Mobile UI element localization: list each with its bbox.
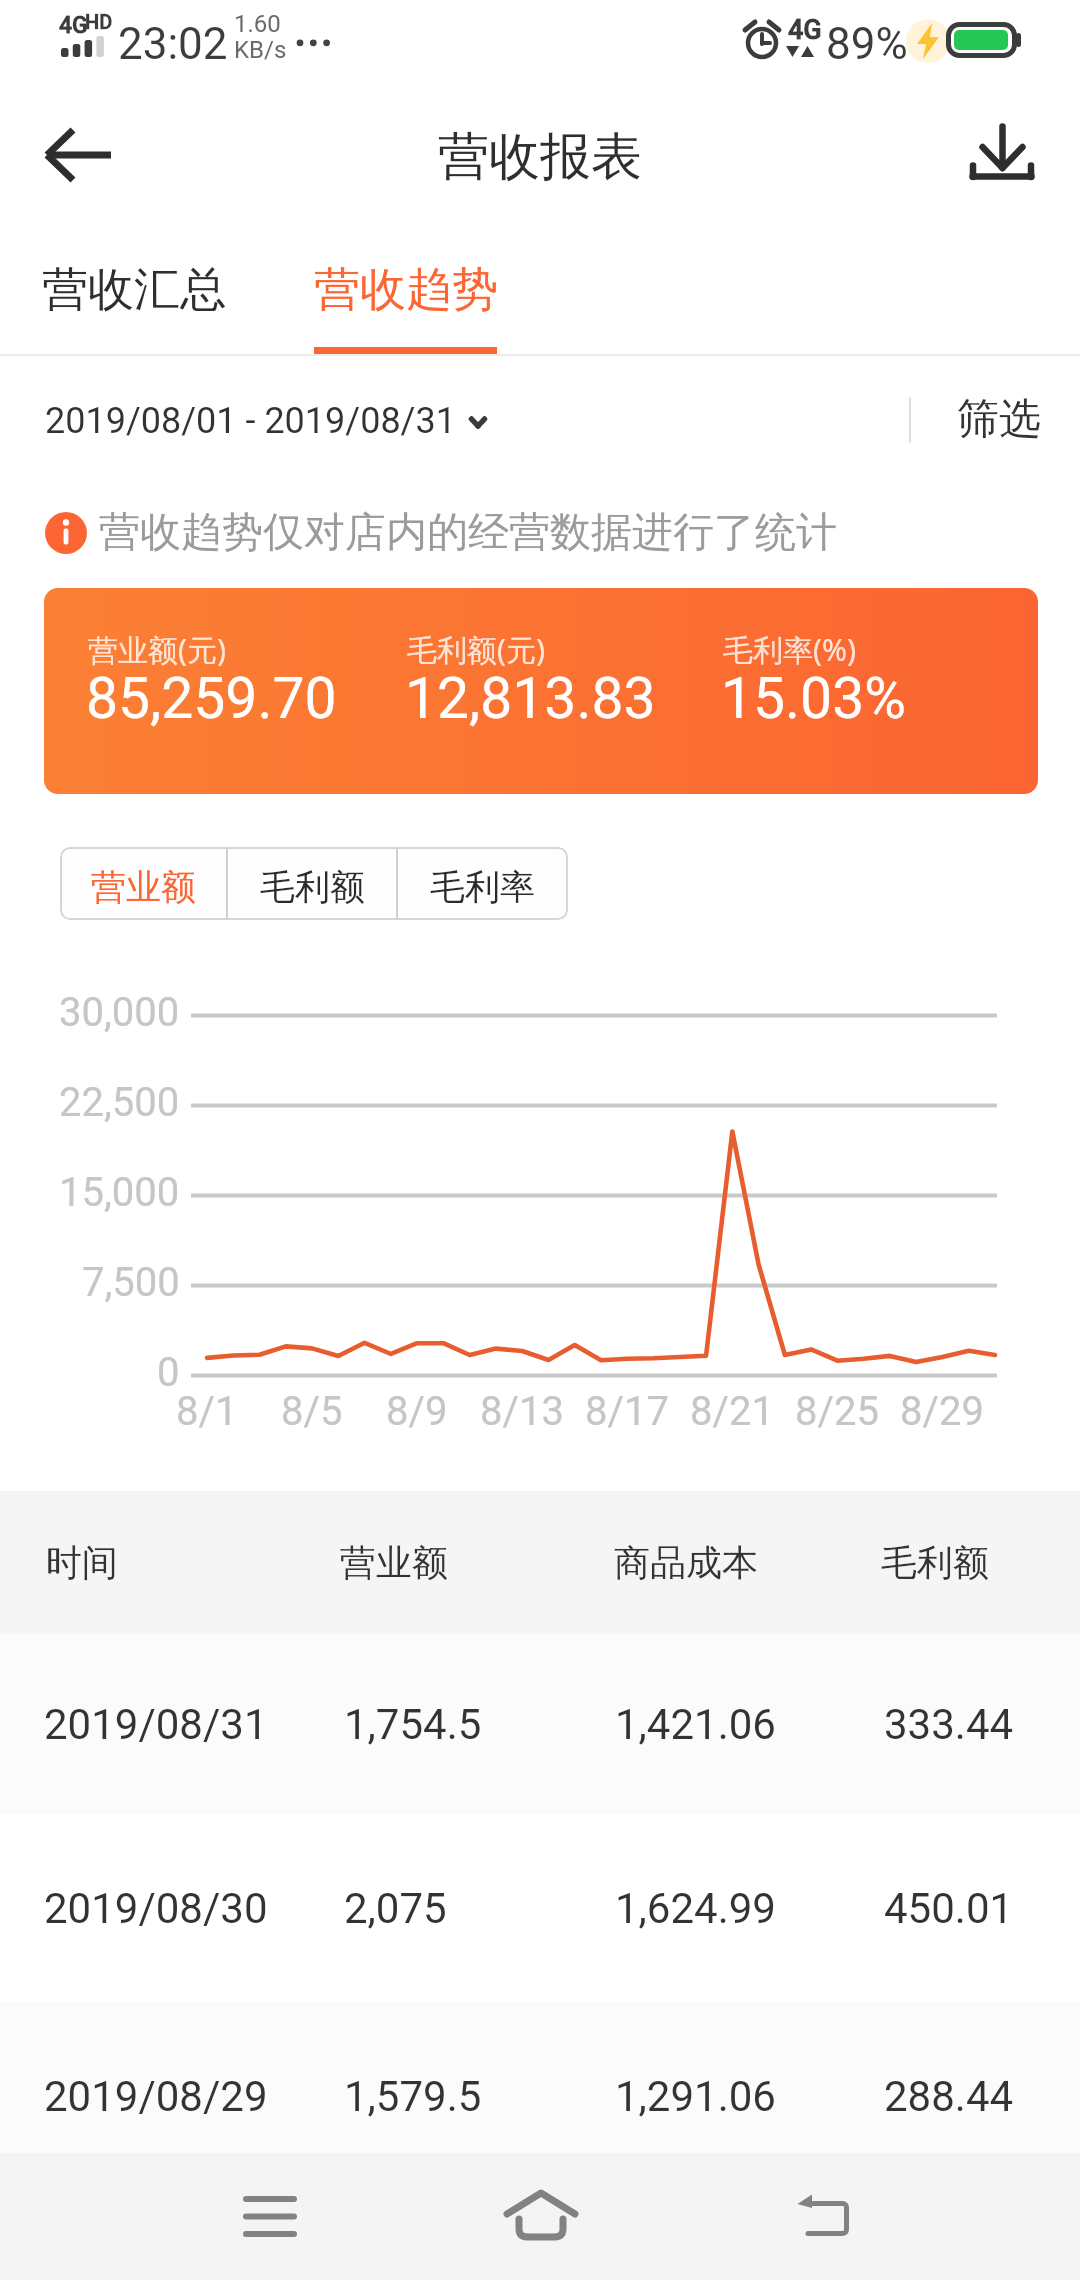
staticText: HD	[85, 10, 113, 33]
staticText: 15,000	[59, 1169, 180, 1216]
staticText: KB/s	[234, 36, 287, 64]
staticText: 营收报表	[438, 125, 642, 189]
staticText: 8/13	[480, 1388, 564, 1435]
staticText: 营业额(元)	[88, 629, 226, 670]
staticText: 23:02	[118, 18, 228, 70]
button[interactable]: Back	[750, 2160, 870, 2270]
staticText: 2019/08/01 - 2019/08/31	[45, 400, 456, 442]
staticText: 8/21	[690, 1388, 774, 1435]
staticText: 8/29	[900, 1388, 984, 1435]
button[interactable]: Home	[481, 2160, 601, 2270]
staticText: 12,813.83	[405, 665, 656, 732]
staticText: 营收汇总	[42, 261, 226, 319]
staticText: 8/9	[386, 1388, 448, 1435]
staticText: 筛选	[957, 393, 1041, 446]
staticText: 2019/08/30	[44, 1884, 268, 1933]
button[interactable]: 2019/08/30	[0, 1814, 1080, 2002]
staticText: 4G	[788, 14, 822, 46]
button[interactable]: 筛选	[935, 376, 1063, 462]
staticText: 毛利率	[430, 865, 535, 909]
staticText: 30,000	[59, 989, 180, 1036]
staticText: 8/25	[795, 1388, 879, 1435]
button[interactable]: 2019/08/01 - 2019/08/31	[14, 376, 514, 462]
staticText: 2019/08/29	[44, 2072, 268, 2121]
staticText: 营业额	[340, 1540, 448, 1585]
staticText: 2019/08/31	[44, 1700, 268, 1749]
staticText: 1,754.5	[344, 1700, 482, 1749]
button[interactable]: 2019/08/31	[0, 1634, 1080, 1814]
staticText: 毛利额	[881, 1540, 989, 1585]
button[interactable]: 营业额(元)	[44, 588, 1038, 794]
staticText: 8/5	[281, 1388, 343, 1435]
staticText: 288.44	[884, 2072, 1014, 2121]
staticText: 营收趋势	[314, 261, 498, 319]
button[interactable]: Recents	[210, 2160, 330, 2270]
staticText: 商品成本	[614, 1540, 758, 1585]
button[interactable]: 营收趋势	[272, 232, 540, 348]
staticText: 85,259.70	[86, 665, 337, 732]
staticText: 333.44	[884, 1700, 1014, 1749]
staticText: 毛利额	[260, 865, 365, 909]
staticText: 1,624.99	[615, 1884, 776, 1933]
button[interactable]: 2019/08/29	[0, 2002, 1080, 2190]
staticText: 22,500	[59, 1079, 180, 1126]
staticText: 2,075	[344, 1884, 447, 1933]
staticText: 15.03%	[721, 665, 906, 732]
staticText: 营业额	[91, 865, 196, 909]
button[interactable]: 营业额	[60, 847, 227, 920]
staticText: 毛利率(%)	[723, 629, 856, 670]
staticText: 89%	[826, 18, 908, 70]
button[interactable]: 毛利额	[227, 847, 397, 920]
button[interactable]: 毛利率	[397, 847, 568, 920]
staticText: 营收趋势仅对店内的经营数据进行了统计	[99, 507, 837, 559]
staticText: 时间	[46, 1540, 118, 1585]
staticText: 7,500	[82, 1259, 180, 1306]
staticText: 450.01	[884, 1884, 1014, 1933]
button[interactable]: Back	[14, 109, 114, 201]
staticText: 0	[157, 1349, 180, 1396]
button[interactable]: Download	[952, 109, 1052, 201]
staticText: 4G	[59, 12, 88, 39]
staticText: 1,421.06	[615, 1700, 776, 1749]
staticText: 8/17	[585, 1388, 669, 1435]
staticText: 1.60	[234, 10, 281, 38]
staticText: 毛利额(元)	[407, 629, 545, 670]
button[interactable]: 营收汇总	[0, 232, 268, 348]
staticText: 1,291.06	[615, 2072, 776, 2121]
staticText: 1,579.5	[344, 2072, 482, 2121]
staticText: 8/1	[176, 1388, 238, 1435]
